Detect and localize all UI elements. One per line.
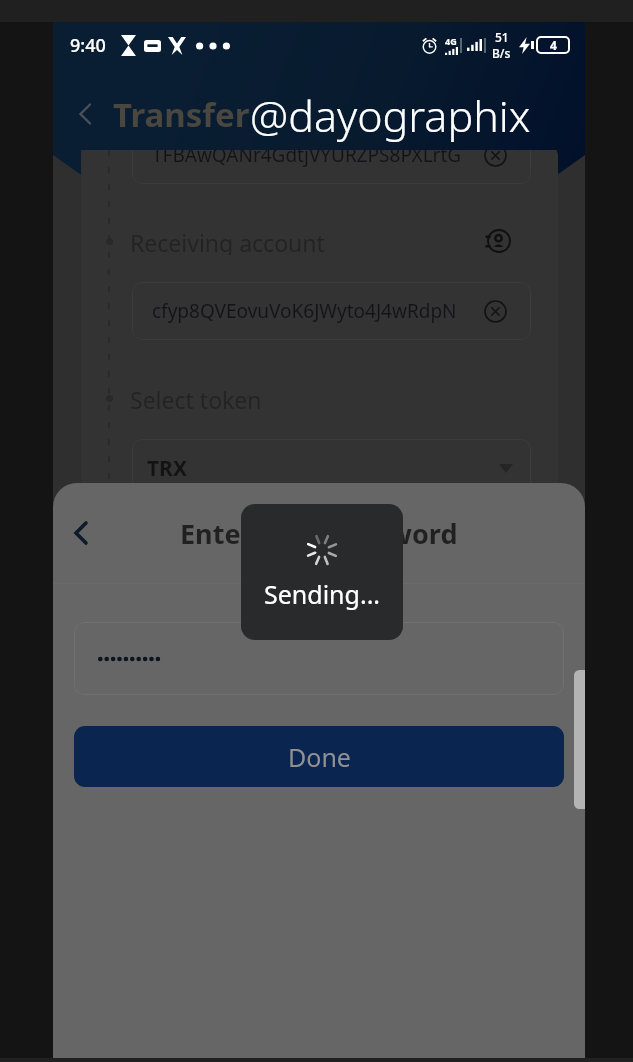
- button[interactable]: Back: [61, 90, 109, 138]
- staticText: Receiving account: [130, 227, 325, 255]
- button[interactable]: Done: [74, 726, 564, 787]
- staticText: Sending...: [264, 577, 381, 611]
- staticText: B/s: [492, 45, 511, 61]
- staticText: TFBAwQANr4GdtjVYURZPS8PXLrtG: [152, 150, 462, 168]
- staticText: TRX: [147, 454, 187, 483]
- button[interactable]: TFBAwQANr4GdtjVYURZPS8PXLrtG: [132, 150, 531, 184]
- button[interactable]: Choose contact: [483, 227, 511, 255]
- staticText: Done: [288, 740, 351, 774]
- button[interactable]: cfyp8QVEovuVoK6JWyto4J4wRdpN: [132, 282, 531, 340]
- button[interactable]: Back: [56, 509, 104, 557]
- staticText: cfyp8QVEovuVoK6JWyto4J4wRdpN: [152, 298, 457, 324]
- button[interactable]: TRX: [132, 439, 531, 497]
- staticText: Select token: [130, 384, 262, 412]
- other: Clear: [484, 150, 507, 167]
- staticText: Enter your password: [180, 515, 458, 552]
- other: Clear: [484, 300, 507, 323]
- staticText: 4G: [445, 35, 457, 47]
- staticText: 9:40: [70, 33, 106, 58]
- staticText: @dayographix: [250, 86, 531, 145]
- staticText: 4: [550, 37, 557, 53]
- button[interactable]: [74, 622, 564, 695]
- staticText: Transfer: [113, 92, 250, 137]
- staticText: 51: [495, 29, 509, 45]
